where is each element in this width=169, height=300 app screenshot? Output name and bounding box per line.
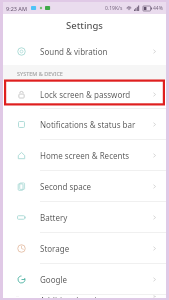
staticText: Lock screen & password [40, 89, 131, 100]
other: Open Home screen & Recents [151, 152, 158, 159]
staticText: 44% [153, 5, 163, 12]
button[interactable]: Google [3, 263, 166, 294]
staticText: SYSTEM & DEVICE [17, 70, 63, 77]
other: Open Notifications & status bar [151, 121, 158, 128]
button[interactable]: Storage [3, 232, 166, 263]
button[interactable]: Home screen & Recents [3, 139, 166, 170]
staticText: Home screen & Recents [40, 150, 130, 161]
button[interactable]: Lock screen & password [3, 81, 166, 108]
staticText: Additional settings [40, 295, 111, 298]
other: Open Additional settings [151, 295, 158, 298]
staticText: 0.19K/s [105, 5, 123, 12]
other: Open Storage [151, 245, 158, 252]
staticText: Sound & vibration [40, 46, 108, 57]
other: Open Sound & vibration [151, 48, 158, 55]
staticText: 9:23 AM [6, 5, 28, 12]
other: Open Second space [151, 183, 158, 190]
other: Open Battery [151, 214, 158, 221]
button[interactable]: Additional settings [3, 294, 166, 298]
button[interactable]: Notifications & status bar [3, 108, 166, 139]
button[interactable]: Sound & vibration [3, 37, 166, 65]
staticText: Second space [40, 181, 92, 192]
other: Open Google [151, 276, 158, 283]
staticText: Storage [40, 243, 70, 254]
other: Open Lock screen & password [151, 91, 158, 98]
staticText: Battery [40, 212, 68, 223]
button[interactable]: Battery [3, 201, 166, 232]
staticText: Google [40, 274, 67, 285]
staticText: Settings [66, 19, 103, 32]
staticText: Notifications & status bar [40, 119, 136, 130]
button[interactable]: Second space [3, 170, 166, 201]
